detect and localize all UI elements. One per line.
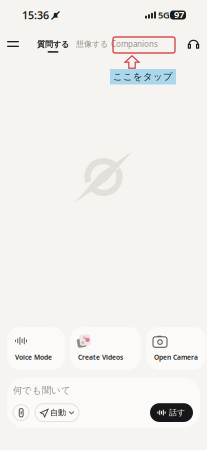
staticText: 想像する bbox=[76, 39, 108, 49]
button[interactable]: Support bbox=[183, 32, 203, 55]
staticText: Companions bbox=[111, 39, 158, 49]
staticText: 何でも聞いて bbox=[13, 385, 71, 396]
button[interactable]: Open Camera bbox=[146, 327, 206, 370]
staticText: 97 bbox=[174, 8, 184, 21]
button[interactable]: 想像する bbox=[76, 35, 108, 53]
button[interactable]: Companions bbox=[111, 35, 158, 53]
staticText: 15:36 bbox=[22, 8, 49, 22]
staticText: 話す bbox=[169, 408, 185, 417]
staticText: 自動 bbox=[50, 408, 66, 417]
button[interactable]: 話す bbox=[150, 403, 193, 422]
staticText: 質問する bbox=[37, 39, 69, 49]
button[interactable]: Create Videos bbox=[70, 327, 141, 370]
staticText: Open Camera bbox=[154, 353, 198, 362]
button[interactable]: Voice Mode bbox=[7, 327, 65, 370]
button[interactable]: 自動 bbox=[35, 404, 79, 421]
staticText: Create Videos bbox=[78, 353, 123, 362]
staticText: 5G bbox=[158, 9, 170, 21]
staticText: Voice Mode bbox=[15, 353, 52, 362]
button[interactable]: 質問する bbox=[37, 35, 69, 53]
staticText: ここをタップ bbox=[113, 71, 173, 82]
button[interactable]: Attach bbox=[13, 405, 29, 421]
button[interactable]: Menu bbox=[4, 32, 22, 56]
